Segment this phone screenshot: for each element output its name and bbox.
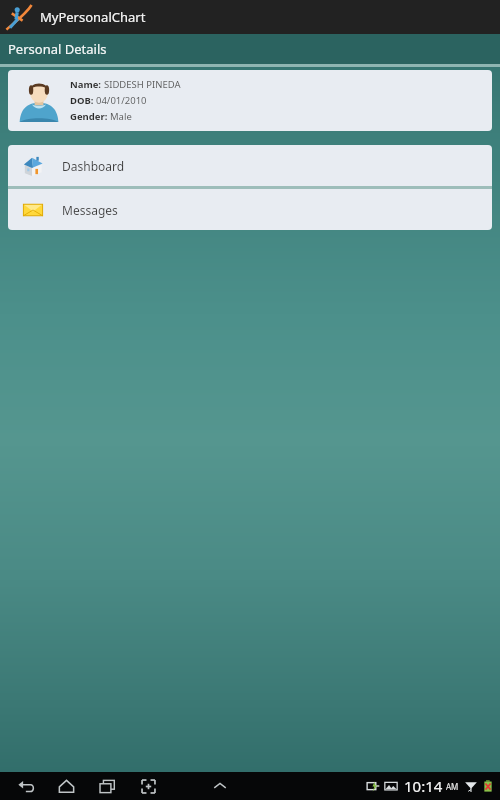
staticText: 10:14: [404, 776, 443, 796]
button[interactable]: Show notifications: [207, 773, 233, 799]
staticText: Name:: [70, 78, 104, 91]
staticText: Gender:: [70, 110, 110, 123]
staticText: Messages: [62, 202, 118, 218]
button[interactable]: Messages: [8, 189, 492, 230]
staticText: DOB:: [70, 94, 96, 107]
button[interactable]: Home: [53, 773, 79, 799]
button[interactable]: Screenshot: [135, 773, 161, 799]
staticText: Male: [110, 110, 132, 123]
button[interactable]: Dashboard: [8, 145, 492, 186]
button[interactable]: Recent apps: [94, 773, 120, 799]
staticText: SIDDESH PINEDA: [104, 78, 181, 91]
staticText: AM: [446, 781, 459, 792]
staticText: Personal Details: [8, 40, 107, 58]
button[interactable]: Name:: [8, 70, 492, 131]
staticText: MyPersonalChart: [40, 8, 146, 26]
staticText: 04/01/2010: [96, 94, 147, 107]
other: MyPersonalChart logo: [4, 2, 34, 32]
button[interactable]: Back: [12, 773, 38, 799]
staticText: Dashboard: [62, 158, 125, 174]
